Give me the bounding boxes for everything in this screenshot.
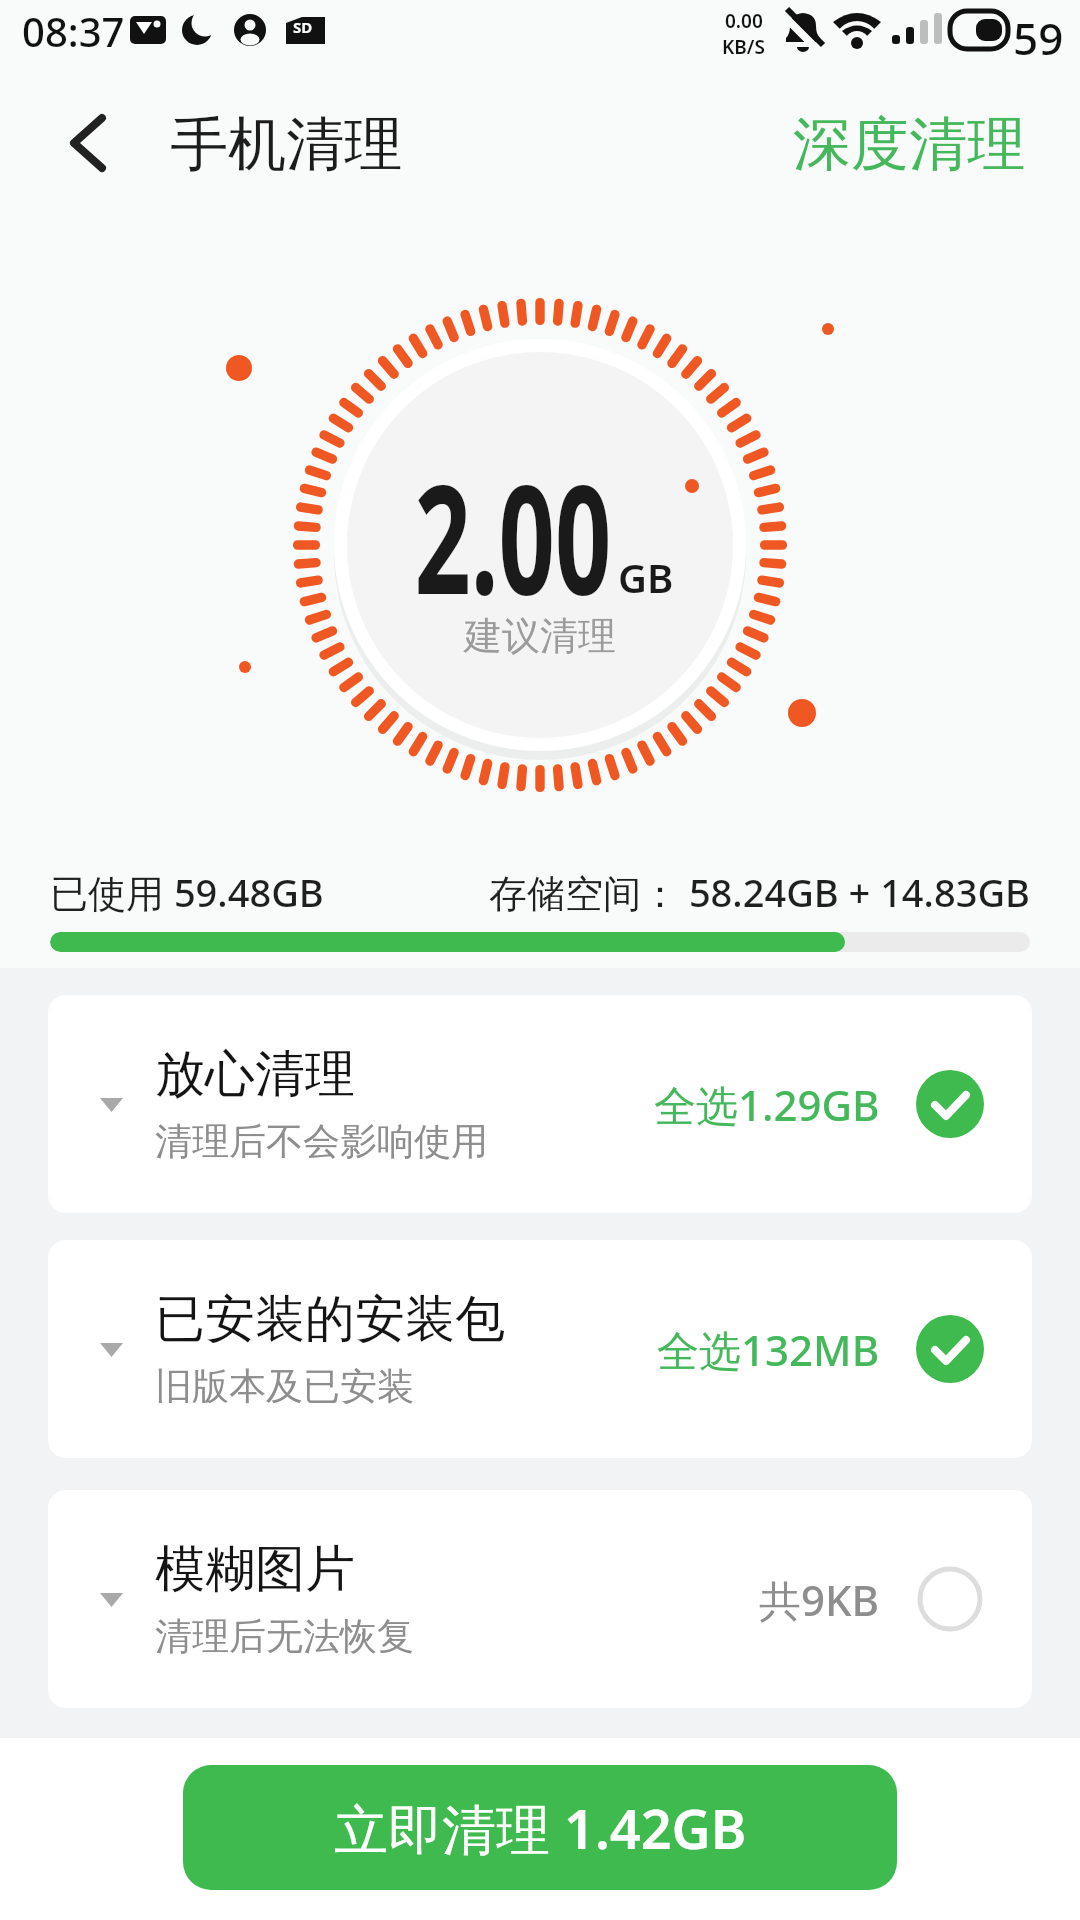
staticText: 08:37: [22, 4, 125, 58]
button[interactable]: 深度清理: [793, 108, 1025, 181]
staticText: 已使用 59.48GB: [50, 866, 324, 918]
staticText: 放心清理: [155, 1043, 355, 1106]
staticText: 共9KB: [759, 1571, 880, 1628]
staticText: 旧版本及已安装: [155, 1363, 414, 1410]
button[interactable]: 放心清理: [48, 995, 1032, 1213]
staticText: 0.00: [725, 8, 763, 34]
staticText: 已安装的安装包: [155, 1288, 505, 1351]
staticText: 立即清理 1.42GB: [334, 1791, 747, 1865]
button[interactable]: 立即清理 1.42GB: [183, 1765, 897, 1890]
button[interactable]: 模糊图片: [48, 1490, 1032, 1708]
button[interactable]: 已安装的安装包: [48, 1240, 1032, 1458]
staticText: 全选132MB: [657, 1321, 880, 1378]
staticText: KB/S: [722, 34, 765, 60]
staticText: 全选1.29GB: [654, 1076, 880, 1133]
staticText: 手机清理: [170, 108, 402, 181]
staticText: 建议清理: [464, 612, 616, 660]
staticText: GB: [618, 550, 674, 604]
staticText: 清理后无法恢复: [155, 1613, 414, 1660]
staticText: 2.00: [414, 433, 612, 639]
staticText: 清理后不会影响使用: [155, 1118, 488, 1165]
staticText: 存储空间： 58.24GB + 14.83GB: [489, 866, 1030, 918]
staticText: 59: [1013, 8, 1064, 68]
staticText: 深度清理: [793, 108, 1025, 181]
staticText: 模糊图片: [155, 1538, 355, 1601]
button[interactable]: [68, 116, 108, 170]
staticText: SD: [293, 17, 313, 37]
